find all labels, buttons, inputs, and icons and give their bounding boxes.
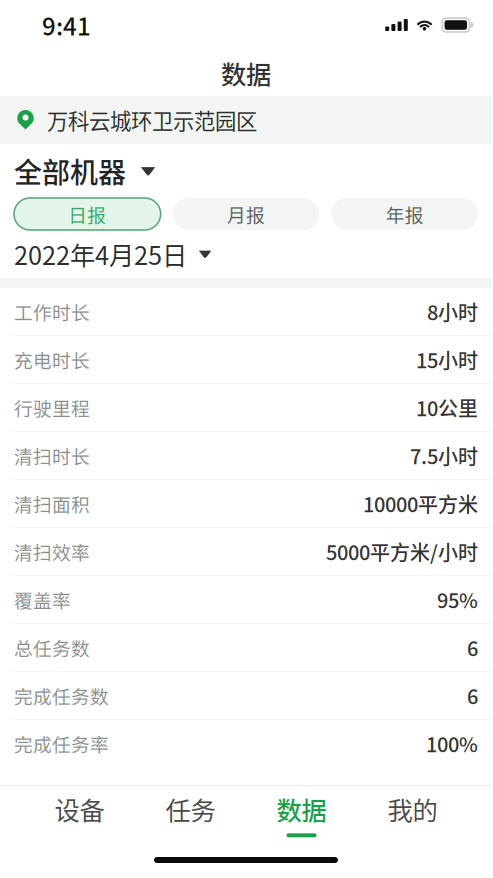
staticText: 8小时 <box>427 297 478 326</box>
staticText: 工作时长 <box>14 298 90 325</box>
button[interactable]: 2022年4月25日 <box>0 230 492 278</box>
staticText: 完成任务数 <box>14 682 109 709</box>
button[interactable]: 全部机器 <box>0 144 492 198</box>
staticText: 月报 <box>227 200 265 227</box>
staticText: 10公里 <box>416 393 478 422</box>
button[interactable]: 月报 <box>173 198 319 230</box>
button[interactable]: 万科云城环卫示范园区 <box>0 96 492 144</box>
staticText: 9:41 <box>42 8 91 42</box>
button[interactable]: 我的 <box>357 786 468 842</box>
staticText: 年报 <box>386 200 424 227</box>
button[interactable]: 设备 <box>24 786 135 842</box>
staticText: 6 <box>467 633 478 662</box>
staticText: 行驶里程 <box>14 394 90 421</box>
staticText: 全部机器 <box>14 151 126 191</box>
staticText: 我的 <box>387 791 437 827</box>
button[interactable]: 年报 <box>331 198 478 230</box>
button[interactable]: 任务 <box>135 786 246 842</box>
staticText: 总任务数 <box>14 634 90 661</box>
staticText: 15小时 <box>416 345 478 374</box>
staticText: 清扫时长 <box>14 442 90 469</box>
staticText: 充电时长 <box>14 346 90 373</box>
staticText: 覆盖率 <box>14 586 71 613</box>
staticText: 10000平方米 <box>363 489 478 518</box>
staticText: 清扫效率 <box>14 538 90 565</box>
staticText: 95% <box>437 585 478 614</box>
staticText: 完成任务率 <box>14 730 109 757</box>
staticText: 2022年4月25日 <box>14 236 187 272</box>
staticText: 万科云城环卫示范园区 <box>47 105 257 135</box>
staticText: 日报 <box>68 200 106 227</box>
staticText: 6 <box>467 681 478 710</box>
staticText: 清扫面积 <box>14 490 90 517</box>
button[interactable]: 日报 <box>14 198 161 230</box>
staticText: 数据 <box>276 791 326 827</box>
staticText: 设备 <box>54 791 104 827</box>
staticText: 数据 <box>221 55 271 91</box>
staticText: 7.5小时 <box>410 441 478 470</box>
button[interactable]: 数据 <box>246 786 357 842</box>
staticText: 100% <box>426 729 478 758</box>
staticText: 5000平方米/小时 <box>326 537 478 566</box>
staticText: 任务 <box>165 791 215 827</box>
